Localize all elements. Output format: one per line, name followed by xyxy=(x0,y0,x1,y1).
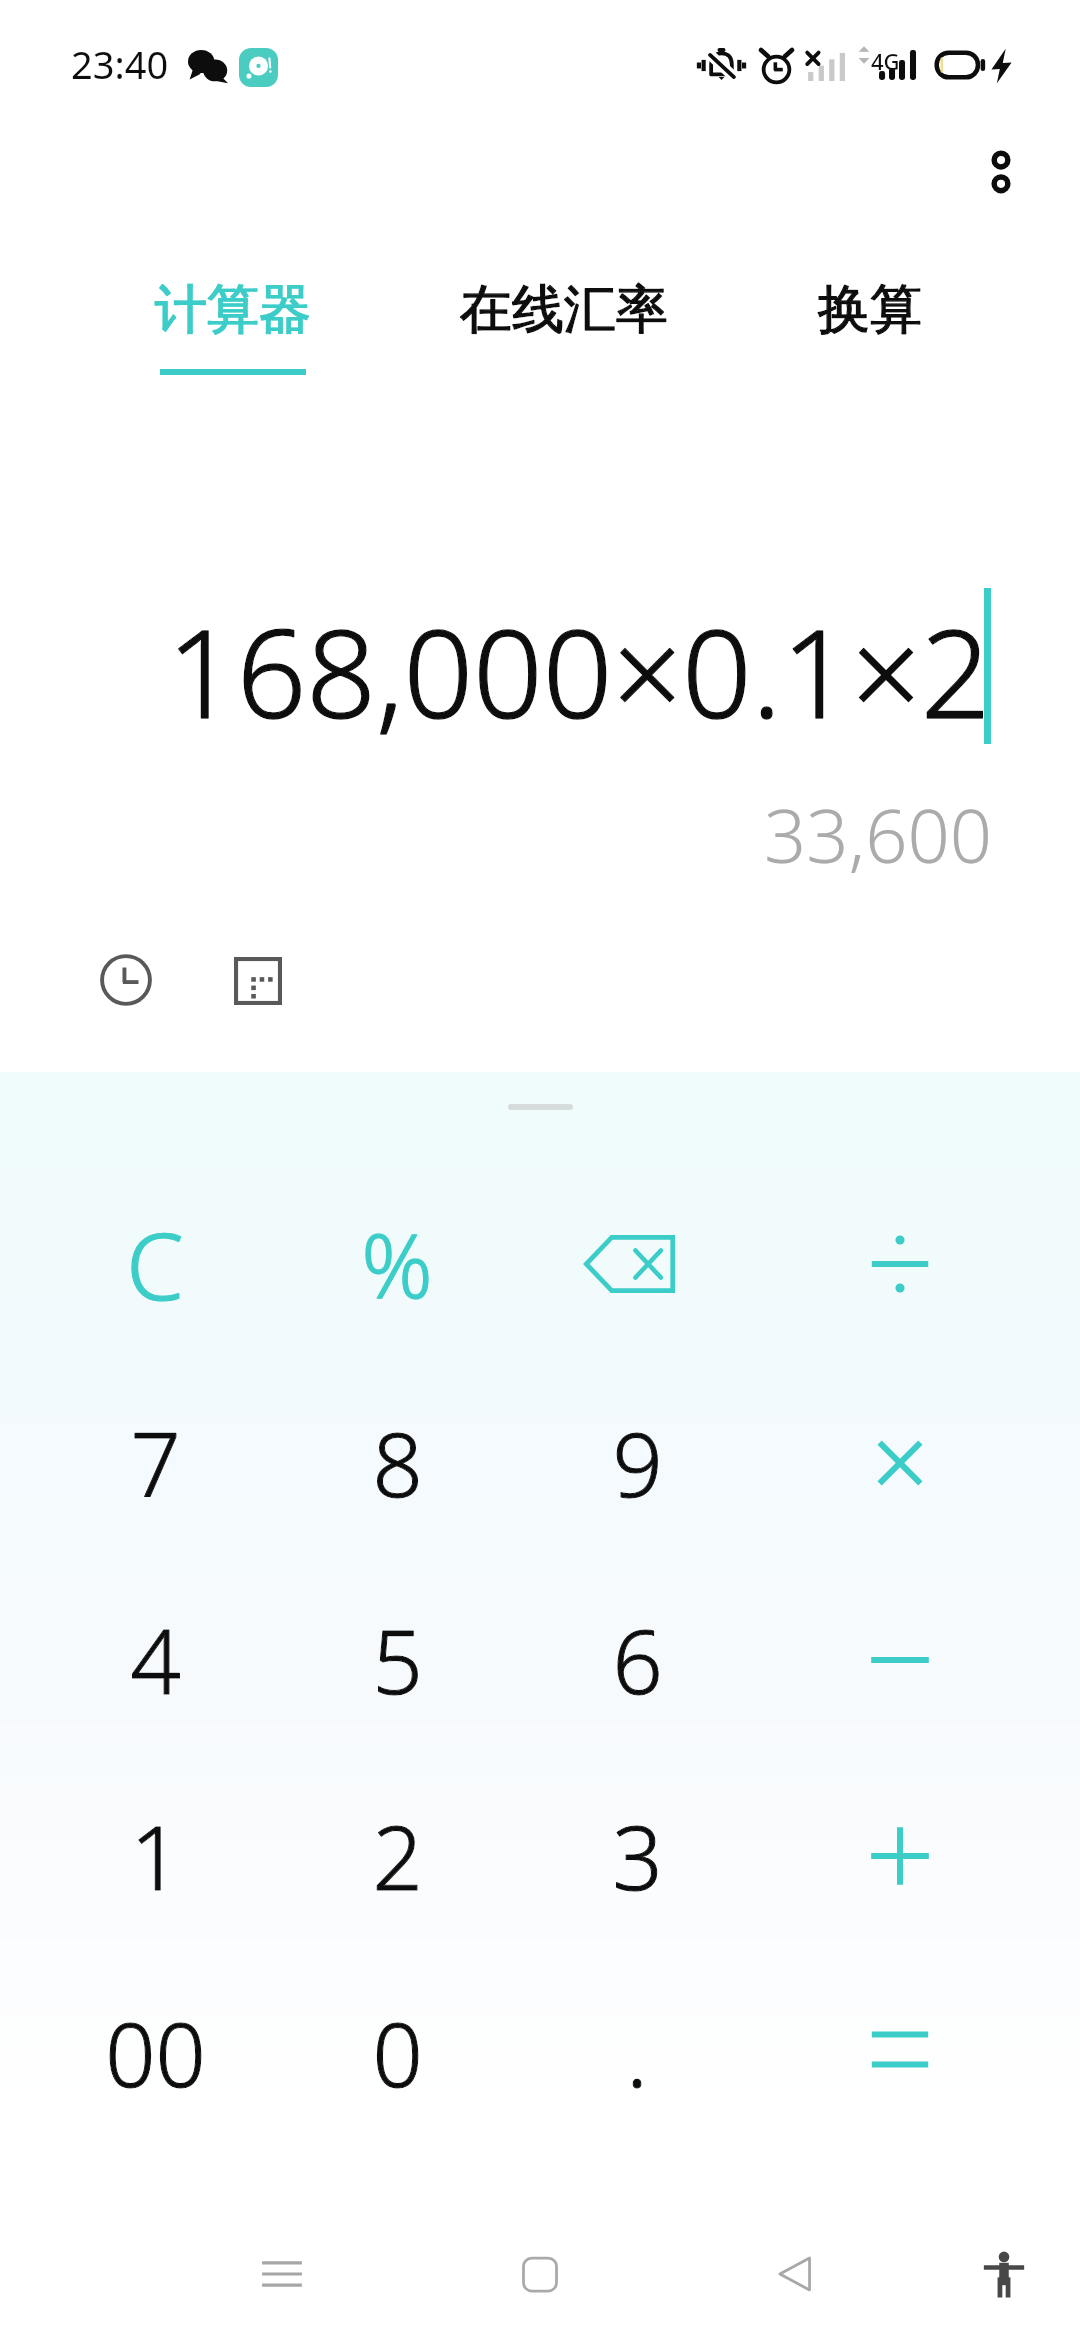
staticText: 3 xyxy=(612,1796,663,1916)
staticText: 4 xyxy=(130,1600,181,1720)
staticText: 1 xyxy=(130,1796,181,1916)
button[interactable]: 6 xyxy=(537,1570,737,1750)
staticText: 33,600 xyxy=(764,784,992,885)
button[interactable]: More options xyxy=(960,127,1042,209)
button[interactable]: 9 xyxy=(537,1373,737,1553)
button[interactable]: Scientific keypad xyxy=(218,941,298,1021)
staticText: 5 xyxy=(372,1600,423,1720)
staticText: 2 xyxy=(372,1796,423,1916)
staticText: . xyxy=(626,1993,648,2113)
button[interactable]: 换算 xyxy=(720,277,1020,369)
staticText: 7 xyxy=(130,1403,181,1523)
staticText: 计算器 xyxy=(155,277,311,343)
button[interactable]: 2 xyxy=(297,1766,497,1946)
button[interactable]: Multiply xyxy=(800,1373,1000,1553)
staticText: 0 xyxy=(372,1993,423,2113)
button[interactable]: C xyxy=(55,1174,255,1354)
staticText: % xyxy=(361,1204,433,1324)
staticText: 1 xyxy=(130,1796,181,1916)
staticText: 4G xyxy=(871,46,900,76)
staticText: 168,000×0.1×2 xyxy=(167,588,991,754)
button[interactable]: 0 xyxy=(297,1963,497,2143)
button[interactable]: Backspace xyxy=(529,1174,729,1354)
button[interactable]: Back xyxy=(747,2226,843,2322)
staticText: . xyxy=(626,1993,648,2113)
button[interactable]: 1 xyxy=(55,1766,255,1946)
staticText: 0 xyxy=(372,1993,423,2113)
button[interactable]: Home xyxy=(492,2226,588,2322)
button[interactable]: 在线汇率 xyxy=(414,277,714,369)
button[interactable]: History xyxy=(86,940,166,1020)
button[interactable]: . xyxy=(537,1963,737,2143)
staticText: 00 xyxy=(105,1993,206,2113)
button[interactable]: Equals xyxy=(800,1963,1000,2143)
staticText: 4 xyxy=(130,1600,181,1720)
button[interactable]: % xyxy=(297,1174,497,1354)
staticText: 8 xyxy=(372,1403,423,1523)
button[interactable]: Divide xyxy=(800,1174,1000,1354)
staticText: 在线汇率 xyxy=(460,277,668,343)
button[interactable]: 3 xyxy=(537,1766,737,1946)
staticText: 5 xyxy=(372,1600,423,1720)
staticText: 7 xyxy=(130,1403,181,1523)
staticText: 6 xyxy=(612,1600,663,1720)
staticText: C xyxy=(126,1202,184,1327)
staticText: C xyxy=(126,1202,184,1327)
staticText: % xyxy=(361,1204,433,1324)
staticText: 换算 xyxy=(818,277,922,343)
staticText: 23:40 xyxy=(71,38,169,90)
staticText: 00 xyxy=(105,1993,206,2113)
staticText: 8 xyxy=(372,1403,423,1523)
button[interactable]: Recents xyxy=(234,2226,330,2322)
button[interactable]: 计算器 xyxy=(83,277,383,375)
button[interactable]: 00 xyxy=(55,1963,255,2143)
staticText: 换算 xyxy=(818,277,922,343)
staticText: 在线汇率 xyxy=(460,277,668,343)
staticText: 计算器 xyxy=(155,277,311,343)
button[interactable]: 7 xyxy=(55,1373,255,1553)
staticText: 6 xyxy=(612,1600,663,1720)
staticText: 3 xyxy=(612,1796,663,1916)
staticText: 9 xyxy=(612,1403,663,1523)
button[interactable]: 4 xyxy=(55,1570,255,1750)
button[interactable]: 8 xyxy=(297,1373,497,1553)
button[interactable]: Plus xyxy=(800,1766,1000,1946)
staticText: 9 xyxy=(612,1403,663,1523)
button[interactable]: 5 xyxy=(297,1570,497,1750)
button[interactable]: Accessibility xyxy=(956,2226,1052,2322)
button[interactable]: Minus xyxy=(800,1570,1000,1750)
staticText: 168,000×0.1×2 xyxy=(167,588,991,754)
staticText: 2 xyxy=(372,1796,423,1916)
